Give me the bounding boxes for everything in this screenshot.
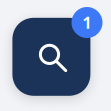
staticText: 1 — [82, 12, 91, 33]
button[interactable]: Search — [0, 0, 111, 111]
